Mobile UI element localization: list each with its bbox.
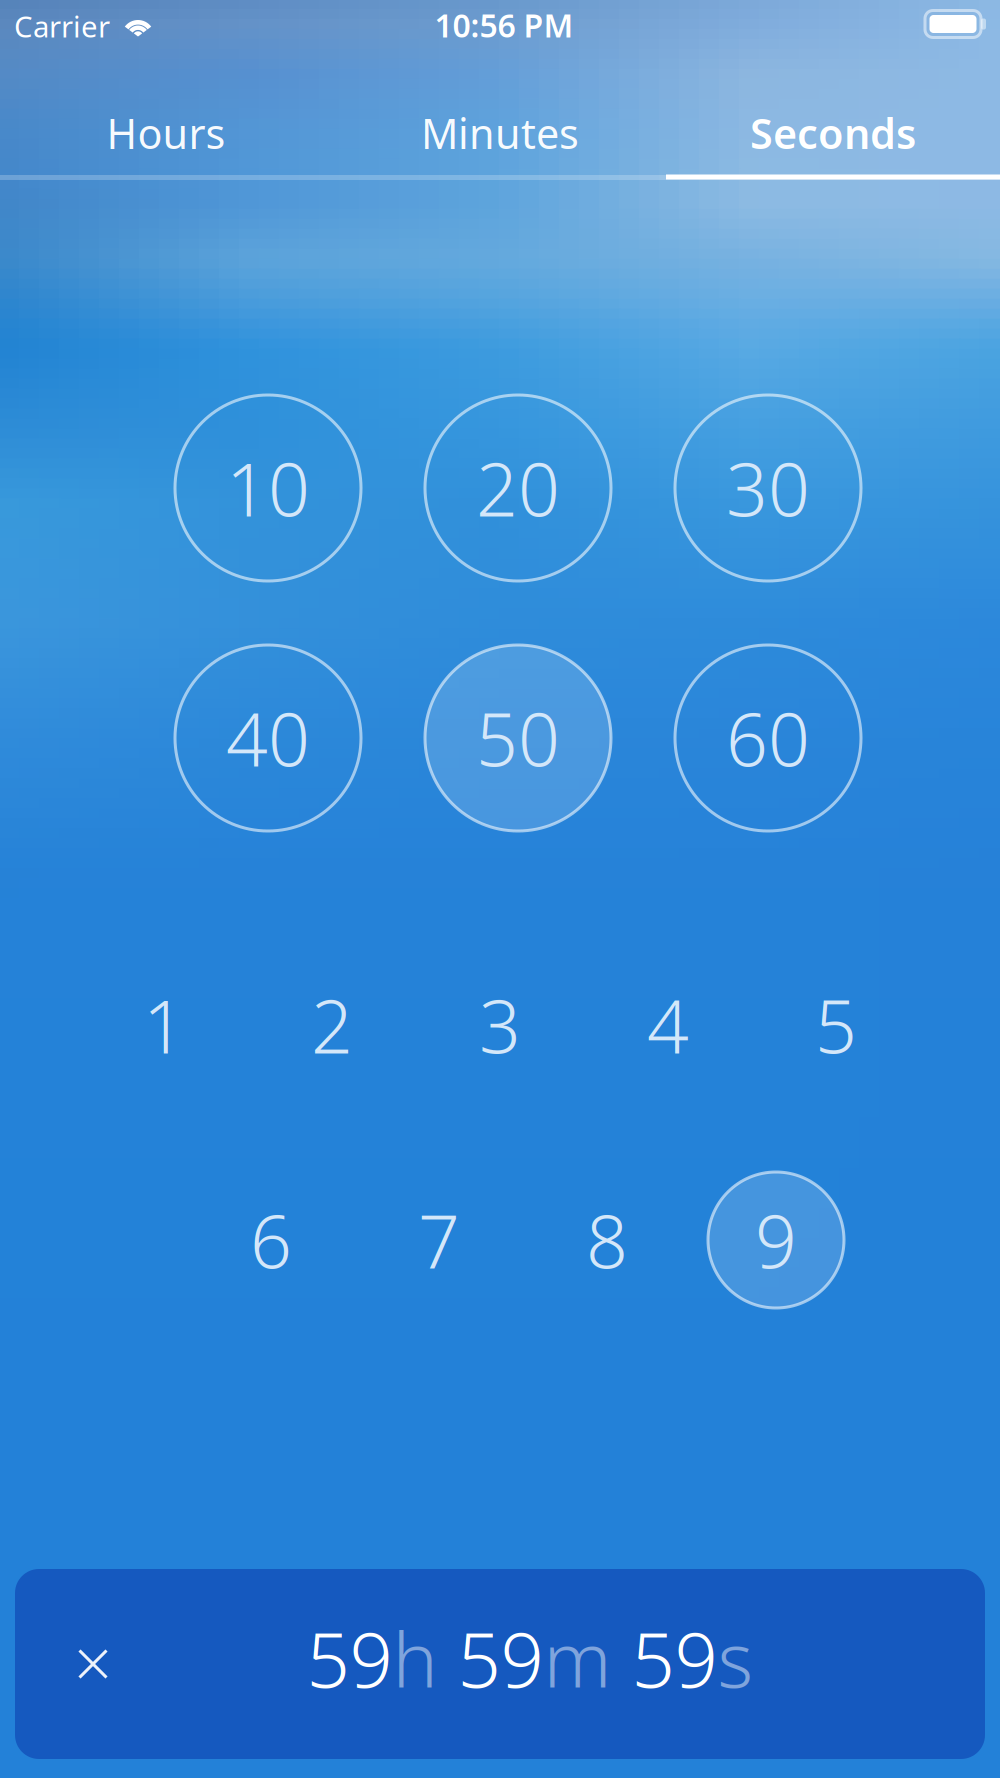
staticText: 4: [647, 976, 689, 1074]
staticText: 10:56 PM: [434, 4, 573, 46]
button[interactable]: 6: [203, 1172, 339, 1308]
staticText: 1: [143, 976, 185, 1074]
button[interactable]: 5: [768, 957, 904, 1093]
staticText: 10: [226, 439, 310, 537]
button[interactable]: 20: [425, 395, 611, 581]
button[interactable]: 10: [175, 395, 361, 581]
button[interactable]: Hours: [0, 73, 332, 193]
staticText: 40: [226, 689, 310, 787]
button[interactable]: Minutes: [333, 73, 666, 193]
button[interactable]: 60: [675, 645, 861, 831]
staticText: 6: [250, 1191, 292, 1289]
button[interactable]: 9: [708, 1172, 844, 1308]
staticText: 60: [726, 689, 810, 787]
staticText: 2: [311, 976, 353, 1074]
staticText: 3: [479, 976, 521, 1074]
staticText: 59: [306, 1607, 392, 1708]
button[interactable]: Seconds: [666, 73, 1000, 193]
button[interactable]: 1: [96, 957, 232, 1093]
button[interactable]: 40: [175, 645, 361, 831]
staticText: h: [392, 1607, 437, 1708]
staticText: 5: [815, 976, 857, 1074]
button[interactable]: 8: [539, 1172, 675, 1308]
staticText: 8: [586, 1191, 628, 1289]
staticText: 7: [418, 1191, 460, 1289]
staticText: 50: [476, 689, 560, 787]
staticText: m: [543, 1607, 611, 1708]
staticText: 59: [437, 1607, 543, 1708]
staticText: Hours: [106, 106, 225, 160]
staticText: 9: [755, 1191, 797, 1289]
button[interactable]: 7: [371, 1172, 507, 1308]
staticText: 30: [726, 439, 810, 537]
staticText: 20: [476, 439, 560, 537]
button[interactable]: 4: [600, 957, 736, 1093]
staticText: Carrier: [14, 6, 110, 45]
button[interactable]: 3: [432, 957, 568, 1093]
staticText: Seconds: [750, 106, 916, 160]
button[interactable]: 2: [264, 957, 400, 1093]
staticText: s: [717, 1607, 753, 1708]
staticText: Minutes: [421, 106, 579, 160]
button[interactable]: 50: [425, 645, 611, 831]
button[interactable]: 30: [675, 395, 861, 581]
staticText: 59: [611, 1607, 717, 1708]
button[interactable]: 59: [306, 1607, 753, 1708]
button[interactable]: Clear duration: [33, 1604, 153, 1724]
